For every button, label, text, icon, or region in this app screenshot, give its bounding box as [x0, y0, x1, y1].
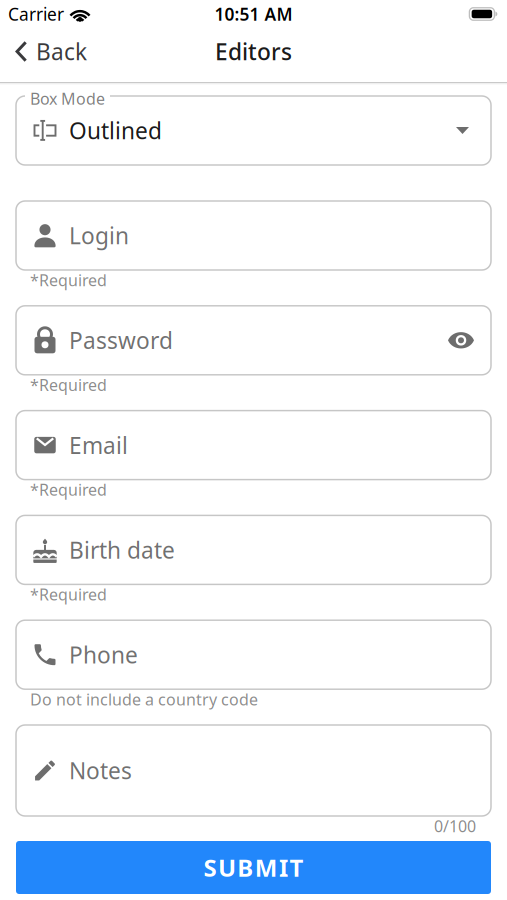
button[interactable]: Outlined — [16, 96, 491, 165]
button[interactable]: Phone — [16, 620, 491, 689]
staticText: Notes — [69, 755, 132, 785]
button[interactable]: S — [16, 841, 491, 894]
staticText: Email — [69, 430, 128, 460]
button[interactable]: Birth date — [16, 515, 491, 584]
staticText: Do not include a country code — [30, 689, 258, 710]
staticText: M — [255, 852, 278, 883]
staticText: I — [279, 852, 288, 883]
staticText: *Required — [30, 584, 107, 605]
staticText: Birth date — [69, 535, 175, 565]
staticText: Editors — [215, 36, 292, 66]
button[interactable]: Email — [16, 411, 491, 480]
staticText: U — [218, 852, 236, 883]
staticText: Outlined — [69, 115, 162, 145]
staticText: 10:51 AM — [214, 2, 292, 25]
button[interactable] — [448, 331, 474, 349]
button[interactable]: Back — [0, 36, 87, 66]
button[interactable]: Notes — [16, 725, 491, 816]
staticText: Carrier — [8, 2, 64, 25]
staticText: *Required — [30, 479, 107, 500]
staticText: Back — [36, 36, 87, 66]
staticText: 0/100 — [434, 815, 476, 837]
staticText: *Required — [30, 374, 107, 395]
staticText: *Required — [30, 269, 107, 291]
staticText: T — [289, 852, 303, 883]
staticText: B — [237, 852, 253, 883]
staticText: Box Mode — [30, 88, 105, 109]
staticText: S — [203, 852, 216, 883]
button[interactable]: Login — [16, 201, 491, 270]
staticText: Login — [69, 220, 129, 250]
staticText: Password — [69, 325, 173, 355]
button[interactable]: Password — [16, 306, 491, 375]
staticText: Phone — [69, 640, 138, 670]
